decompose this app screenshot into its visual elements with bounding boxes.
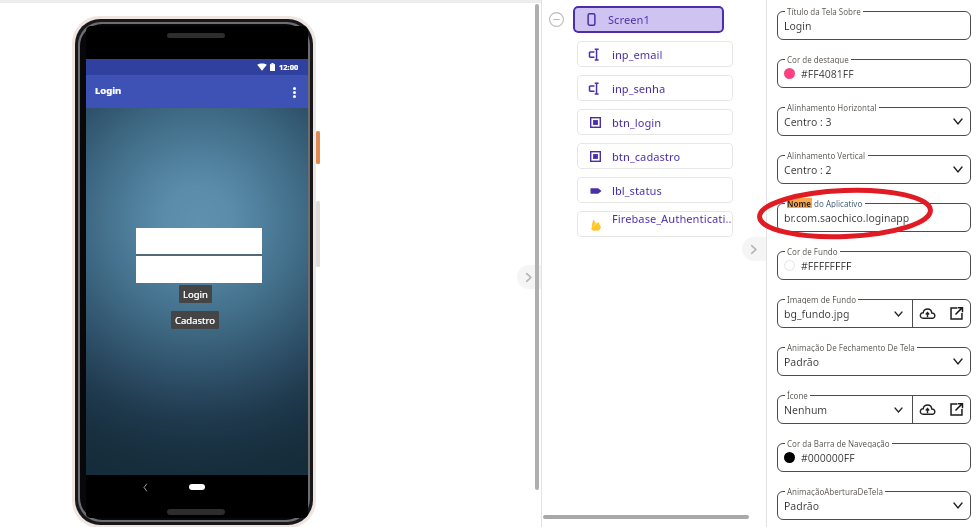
staticText: br.com.saochico.loginapp	[784, 211, 910, 225]
staticText: btn_cadastro	[612, 149, 681, 164]
button[interactable]: Open in new window	[950, 307, 963, 320]
button[interactable]	[777, 203, 971, 232]
button[interactable]	[777, 443, 971, 472]
button[interactable]: Cadastro	[171, 311, 219, 329]
button[interactable]	[777, 155, 971, 184]
button[interactable]	[777, 107, 971, 136]
button[interactable]: inp_senha	[577, 75, 733, 101]
staticText: inp_email	[612, 47, 663, 62]
button[interactable]: btn_login	[577, 109, 733, 135]
staticText: inp_senha	[612, 81, 666, 96]
button[interactable]: Expand properties panel	[742, 237, 766, 261]
button[interactable]	[777, 491, 971, 520]
staticText: #FFFFFFFF	[801, 259, 852, 273]
button[interactable]: Screen1	[573, 6, 724, 33]
staticText: AnimaçãoAberturaDeTela	[787, 486, 883, 496]
button[interactable]	[777, 59, 971, 88]
button[interactable]: Upload file	[919, 305, 936, 322]
staticText: lbl_status	[612, 183, 662, 198]
staticText: Centro : 3	[784, 115, 832, 129]
button[interactable]: btn_cadastro	[577, 143, 733, 169]
staticText: Login	[784, 19, 812, 33]
staticText: Cor de destaque	[787, 54, 849, 64]
staticText: Login	[183, 288, 208, 301]
button[interactable]: Open in new window	[950, 403, 963, 416]
button[interactable]: Collapse tree	[549, 12, 564, 27]
button[interactable]	[777, 347, 971, 376]
button[interactable]: Firebase_Authenticati...	[577, 211, 733, 237]
staticText: Padrão	[784, 355, 820, 369]
staticText: Alinhamento Horizontal	[787, 102, 877, 112]
staticText: Imagem de Fundo	[787, 294, 856, 304]
staticText: Cadastro	[175, 314, 215, 327]
button[interactable]: Login	[86, 75, 308, 108]
button[interactable]	[777, 395, 971, 424]
staticText: Alinhamento Vertical	[787, 150, 866, 160]
button[interactable]	[777, 11, 971, 40]
button[interactable]	[777, 299, 971, 328]
staticText: Cor da Barra de Navegação	[787, 438, 890, 448]
staticText: Login	[95, 84, 122, 97]
staticText: 12:00	[279, 62, 299, 72]
staticText: #FF4081FF	[801, 67, 854, 81]
staticText: #000000FF	[801, 451, 855, 465]
button[interactable]: inp_email	[577, 41, 733, 67]
staticText: do Aplicativo	[812, 198, 863, 208]
button[interactable]: Home	[189, 484, 205, 490]
staticText: Ícone	[787, 390, 808, 400]
staticText: btn_login	[612, 115, 662, 130]
button[interactable]: Upload file	[919, 401, 936, 418]
button[interactable]: lbl_status	[577, 177, 733, 203]
staticText: Título da Tela Sobre	[787, 6, 861, 16]
staticText: Screen1	[608, 12, 650, 27]
staticText: Padrão	[784, 499, 820, 513]
staticText: Cor de Fundo	[787, 246, 838, 256]
staticText: Animação De Fechamento De Tela	[787, 342, 915, 352]
button[interactable]: Expand left panel	[517, 265, 541, 289]
staticText: Nenhum	[784, 403, 828, 417]
staticText: Nome	[787, 198, 812, 208]
staticText: Centro : 2	[784, 163, 832, 177]
staticText: bg_fundo.jpg	[784, 307, 850, 321]
button[interactable]: Login	[179, 285, 212, 303]
button[interactable]: Back	[138, 480, 152, 494]
button[interactable]	[777, 251, 971, 280]
button[interactable]: More options	[285, 83, 303, 101]
staticText: Firebase_Authenticati...	[612, 211, 733, 237]
